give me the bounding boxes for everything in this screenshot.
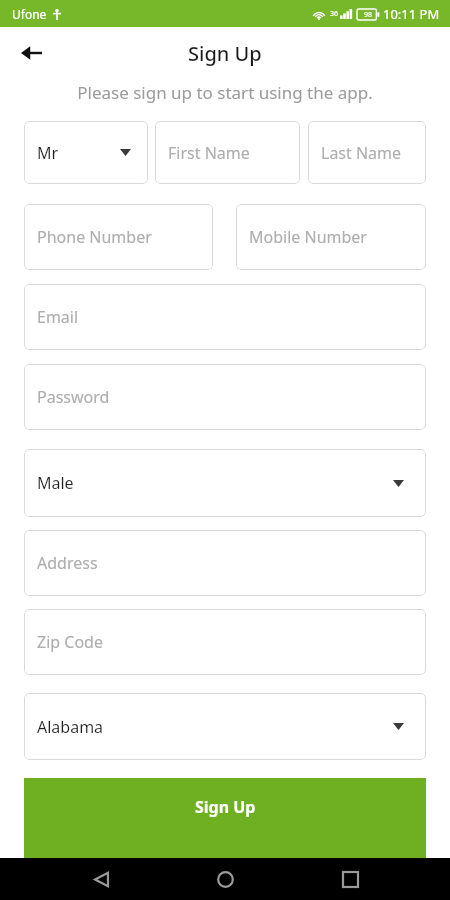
button[interactable]: Mobile Number bbox=[236, 204, 426, 270]
button[interactable]: Password bbox=[24, 364, 426, 430]
staticText: Zip Code bbox=[37, 631, 103, 653]
staticText: Ufone bbox=[12, 6, 47, 22]
button[interactable]: Sign Up bbox=[24, 778, 426, 858]
button[interactable]: Email bbox=[24, 284, 426, 350]
button[interactable]: Last Name bbox=[308, 121, 426, 184]
staticText: Sign Up bbox=[188, 40, 262, 67]
button[interactable]: Male bbox=[24, 449, 426, 517]
staticText: Sign Up bbox=[195, 796, 256, 818]
staticText: Address bbox=[37, 552, 98, 574]
staticText: First Name bbox=[168, 142, 250, 164]
button[interactable]: Phone Number bbox=[24, 204, 213, 270]
button[interactable]: Address bbox=[24, 530, 426, 596]
staticText: Mobile Number bbox=[249, 226, 367, 248]
staticText: 98 bbox=[364, 10, 373, 20]
button[interactable]: Mr bbox=[24, 121, 148, 184]
staticText: Alabama bbox=[37, 716, 104, 738]
button[interactable]: Alabama bbox=[24, 693, 426, 760]
staticText: Phone Number bbox=[37, 226, 152, 248]
button[interactable]: Back bbox=[77, 858, 125, 900]
staticText: Please sign up to start using the app. bbox=[0, 81, 450, 104]
button[interactable]: Zip Code bbox=[24, 609, 426, 675]
staticText: 36 bbox=[330, 9, 339, 19]
staticText: Email bbox=[37, 306, 79, 328]
staticText: Mr bbox=[37, 142, 59, 164]
button[interactable]: First Name bbox=[155, 121, 300, 184]
button[interactable]: Home bbox=[201, 858, 249, 900]
staticText: Last Name bbox=[321, 142, 402, 164]
staticText: Password bbox=[37, 386, 110, 408]
staticText: 10:11 PM bbox=[383, 5, 440, 23]
staticText: Male bbox=[37, 472, 74, 494]
button[interactable]: Recent apps bbox=[326, 858, 374, 900]
button[interactable]: Back bbox=[14, 36, 48, 70]
